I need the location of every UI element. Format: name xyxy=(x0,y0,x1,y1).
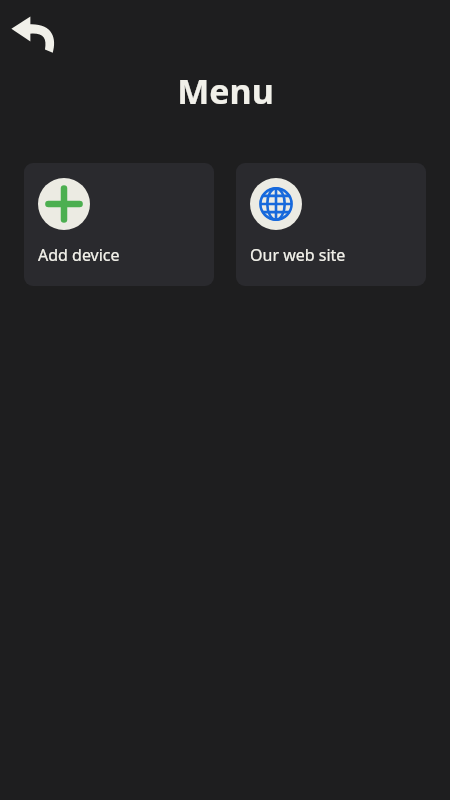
button[interactable]: Back xyxy=(8,8,64,64)
staticText: Our web site xyxy=(250,244,346,266)
staticText: Add device xyxy=(38,244,120,266)
button[interactable]: Our web site xyxy=(236,163,426,286)
button[interactable]: Add device xyxy=(24,163,214,286)
staticText: Menu xyxy=(177,68,274,114)
